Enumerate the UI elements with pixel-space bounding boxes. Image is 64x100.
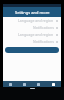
staticText: Language and region xyxy=(18,32,54,37)
button[interactable]: Notifications xyxy=(3,24,61,31)
button[interactable] xyxy=(5,47,59,53)
button[interactable]: Tab 2 xyxy=(31,81,46,87)
staticText: Notifications xyxy=(33,39,54,44)
button[interactable]: Notifications xyxy=(3,38,61,45)
button[interactable]: Language and region xyxy=(3,17,61,24)
button[interactable]: Tab 0 xyxy=(3,81,17,87)
button[interactable]: Tab 3 xyxy=(46,81,61,87)
button[interactable]: Language and region xyxy=(3,31,61,38)
staticText: Notifications xyxy=(33,25,54,30)
staticText: Language and region xyxy=(18,18,54,23)
staticText: Settings and more xyxy=(15,10,50,15)
button[interactable]: Tab 1 xyxy=(17,81,31,87)
